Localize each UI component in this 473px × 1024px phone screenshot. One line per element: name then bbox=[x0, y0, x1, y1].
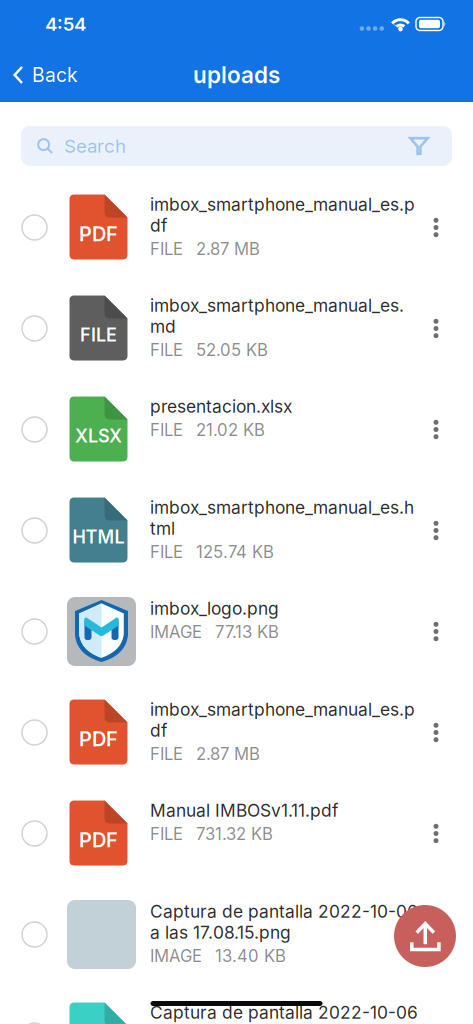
staticText: 13.40 KB bbox=[215, 946, 286, 966]
staticText: FILE bbox=[150, 239, 183, 259]
staticText: PDF bbox=[79, 828, 118, 852]
staticText: imbox_smartphone_manual_es. bbox=[150, 295, 404, 316]
staticText: FILE bbox=[80, 324, 117, 346]
button[interactable]: Select Manual IMBOSv1.11.pdf bbox=[0, 783, 69, 884]
staticText: PDF bbox=[79, 222, 118, 246]
staticText: 77.13 KB bbox=[215, 622, 279, 642]
staticText: md bbox=[150, 316, 176, 337]
staticText: 4:54 bbox=[45, 13, 86, 35]
staticText: 52.05 KB bbox=[196, 340, 268, 360]
staticText: df bbox=[150, 720, 167, 741]
staticText: imbox_logo.png bbox=[150, 598, 279, 619]
button[interactable]: More options bbox=[399, 682, 473, 783]
staticText: 125.74 KB bbox=[196, 542, 274, 562]
staticText: 21.02 KB bbox=[196, 420, 265, 440]
staticText: FILE bbox=[150, 744, 183, 764]
staticText: 2.87 MB bbox=[196, 239, 260, 259]
staticText: df bbox=[150, 215, 167, 236]
staticText: FILE bbox=[150, 340, 183, 360]
staticText: uploads bbox=[193, 61, 280, 89]
staticText: a las 17.08.15.png bbox=[150, 922, 291, 943]
button[interactable]: More options bbox=[399, 480, 473, 581]
button[interactable]: Select imbox_smartphone_manual_es.p bbox=[0, 682, 69, 783]
button[interactable]: Select imbox_smartphone_manual_es.p bbox=[0, 177, 69, 278]
staticText: Captura de pantalla 2022-10-06 bbox=[150, 1002, 418, 1023]
button[interactable]: More options bbox=[399, 985, 473, 1024]
button[interactable]: More options bbox=[399, 177, 473, 278]
staticText: PDF bbox=[79, 727, 118, 751]
staticText: Captura de pantalla 2022-10-06 bbox=[150, 901, 418, 922]
button[interactable]: Search bbox=[21, 126, 452, 166]
button[interactable]: Select Captura de pantalla 2022-10-06 bbox=[0, 884, 69, 985]
staticText: tml bbox=[150, 518, 175, 539]
staticText: FILE bbox=[150, 542, 183, 562]
staticText: IMAGE bbox=[150, 622, 202, 642]
button[interactable]: Select presentacion.xlsx bbox=[0, 379, 69, 480]
staticText: imbox_smartphone_manual_es.p bbox=[150, 194, 415, 215]
button[interactable]: More options bbox=[399, 884, 473, 985]
button[interactable]: Select imbox_logo.png bbox=[0, 581, 69, 682]
button[interactable]: Upload bbox=[394, 905, 456, 967]
staticText: XLSX bbox=[75, 425, 122, 447]
staticText: 731.32 KB bbox=[196, 824, 273, 844]
button[interactable]: More options bbox=[399, 379, 473, 480]
staticText: imbox_smartphone_manual_es.h bbox=[150, 497, 414, 518]
button[interactable]: More options bbox=[399, 278, 473, 379]
staticText: FILE bbox=[150, 420, 183, 440]
staticText: FILE bbox=[150, 824, 183, 844]
staticText: Back bbox=[32, 63, 78, 87]
staticText: HTML bbox=[72, 526, 124, 548]
button[interactable]: More options bbox=[399, 783, 473, 884]
staticText: Manual IMBOSv1.11.pdf bbox=[150, 800, 338, 821]
button[interactable]: Select imbox_smartphone_manual_es.h bbox=[0, 480, 69, 581]
staticText: presentacion.xlsx bbox=[150, 396, 292, 417]
button[interactable]: Select imbox_smartphone_manual_es. bbox=[0, 278, 69, 379]
staticText: Search bbox=[64, 135, 126, 157]
staticText: 2.87 MB bbox=[196, 744, 260, 764]
button[interactable]: Back bbox=[0, 48, 90, 102]
staticText: IMAGE bbox=[150, 946, 202, 966]
staticText: imbox_smartphone_manual_es.p bbox=[150, 699, 415, 720]
button[interactable]: More options bbox=[399, 581, 473, 682]
